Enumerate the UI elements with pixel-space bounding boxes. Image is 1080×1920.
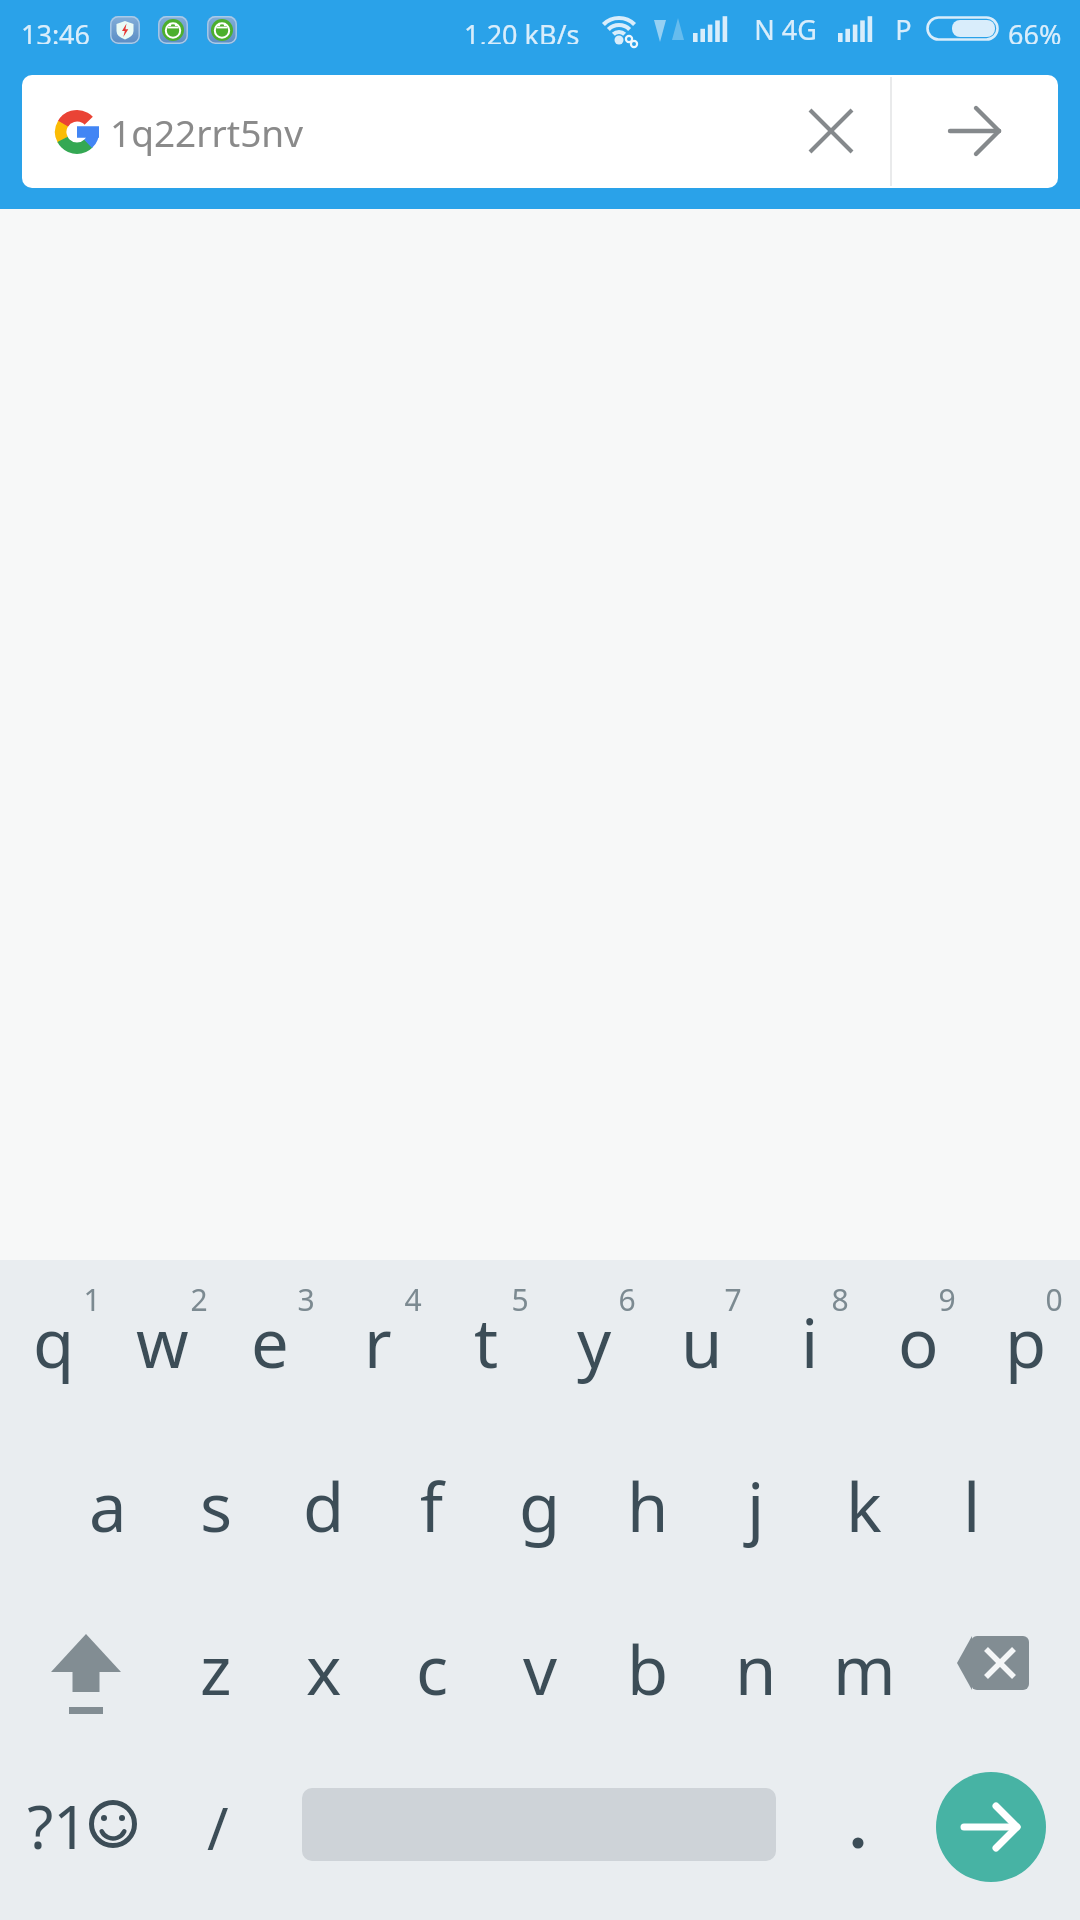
staticText: P <box>895 11 912 48</box>
button[interactable]: b <box>594 1590 702 1746</box>
button[interactable] <box>0 1599 162 1749</box>
staticText: u <box>681 1296 723 1387</box>
staticText: g <box>519 1460 561 1551</box>
staticText: 9 <box>938 1279 956 1320</box>
staticText: n <box>735 1623 777 1714</box>
staticText: 0 <box>1045 1279 1063 1320</box>
staticText: h <box>627 1460 669 1551</box>
button[interactable]: z <box>162 1590 270 1746</box>
button[interactable]: u <box>648 1263 756 1419</box>
button[interactable]: l <box>918 1427 1026 1583</box>
staticText: 5 <box>511 1279 529 1320</box>
button[interactable]: c <box>378 1590 486 1746</box>
staticText: y <box>577 1296 612 1387</box>
button[interactable]: s <box>162 1427 270 1583</box>
button[interactable]: k <box>810 1427 918 1583</box>
staticText: 4 <box>404 1279 422 1320</box>
button[interactable]: g <box>486 1427 594 1583</box>
staticText: 1,20 kB/s <box>464 16 580 44</box>
staticText: 1 <box>83 1279 101 1320</box>
staticText: 8 <box>831 1279 849 1320</box>
button[interactable]: m <box>810 1590 918 1746</box>
staticText: v <box>523 1623 558 1714</box>
staticText: 66% <box>1008 16 1062 44</box>
staticText: o <box>898 1296 939 1387</box>
staticText: 13:46 <box>21 16 91 44</box>
button[interactable]: r <box>324 1263 432 1419</box>
button[interactable]: d <box>270 1427 378 1583</box>
staticText: a <box>89 1460 127 1551</box>
staticText: c <box>416 1623 449 1714</box>
staticText: l <box>963 1460 981 1551</box>
button[interactable]: f <box>378 1427 486 1583</box>
button[interactable]: / <box>164 1764 272 1890</box>
staticText: 3 <box>297 1279 315 1320</box>
button[interactable]: a <box>54 1427 162 1583</box>
button[interactable]: e <box>216 1263 324 1419</box>
button[interactable] <box>918 1599 1080 1749</box>
staticText: f <box>420 1460 444 1551</box>
staticText: r <box>364 1296 392 1387</box>
button[interactable] <box>812 1764 904 1890</box>
staticText: w <box>136 1296 189 1387</box>
staticText: j <box>747 1460 765 1551</box>
staticText: 7 <box>724 1279 742 1320</box>
staticText: ?1 <box>27 1785 88 1867</box>
button[interactable]: q <box>0 1263 108 1419</box>
button[interactable]: n <box>702 1590 810 1746</box>
button[interactable]: o <box>864 1263 972 1419</box>
staticText: N 4G <box>754 11 817 48</box>
button[interactable] <box>936 1772 1046 1882</box>
button[interactable]: y <box>540 1263 648 1419</box>
button[interactable]: v <box>486 1590 594 1746</box>
staticText: d <box>303 1460 345 1551</box>
button[interactable]: p <box>972 1263 1080 1419</box>
button[interactable]: t <box>432 1263 540 1419</box>
staticText: b <box>627 1623 669 1714</box>
staticText: 6 <box>618 1279 636 1320</box>
staticText: 2 <box>190 1279 208 1320</box>
button[interactable]: x <box>270 1590 378 1746</box>
button[interactable]: i <box>756 1263 864 1419</box>
button[interactable] <box>945 101 1005 161</box>
staticText: z <box>200 1623 232 1714</box>
staticText: m <box>833 1623 896 1714</box>
staticText: t <box>474 1296 499 1387</box>
button[interactable]: w <box>108 1263 216 1419</box>
staticText: i <box>801 1296 819 1387</box>
staticText: e <box>251 1296 289 1387</box>
staticText: 1q22rrt5nv <box>110 107 303 157</box>
button[interactable] <box>803 103 859 159</box>
button[interactable]: j <box>702 1427 810 1583</box>
staticText: k <box>846 1460 882 1551</box>
staticText: / <box>207 1788 229 1867</box>
staticText: s <box>200 1460 233 1551</box>
staticText: p <box>1005 1296 1047 1387</box>
button[interactable]: h <box>594 1427 702 1583</box>
staticText: q <box>33 1296 75 1387</box>
button[interactable] <box>0 1764 162 1890</box>
staticText: x <box>306 1623 342 1714</box>
